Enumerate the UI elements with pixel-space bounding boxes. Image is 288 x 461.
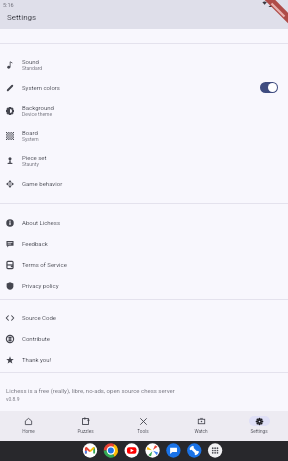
staticText: System — [22, 136, 39, 142]
button[interactable]: Privacy policy — [0, 275, 288, 296]
staticText: Settings — [250, 429, 268, 435]
staticText: Watch — [194, 429, 208, 435]
staticText: Home — [22, 429, 35, 435]
staticText: Terms of Service — [22, 261, 67, 268]
staticText: Staunty — [22, 161, 39, 167]
staticText: About Lichess — [22, 219, 60, 226]
staticText: Privacy policy — [22, 282, 59, 289]
staticText: v0.8.9 — [6, 396, 20, 402]
button[interactable]: Thank you! — [0, 349, 288, 370]
staticText: Lichess is a free (really), libre, no-ad… — [6, 387, 175, 394]
staticText: Piece set — [22, 154, 47, 161]
staticText: Game behavior — [22, 180, 63, 187]
button[interactable]: System colors — [0, 77, 288, 98]
button[interactable]: Background — [0, 98, 288, 123]
staticText: Puzzles — [77, 429, 94, 435]
staticText: Tools — [137, 429, 149, 435]
button[interactable]: About Lichess — [0, 212, 288, 233]
staticText: Background — [22, 104, 54, 111]
staticText: Contribute — [22, 335, 50, 342]
staticText: 5:16 — [3, 2, 14, 8]
staticText: Settings — [7, 13, 37, 22]
button[interactable]: Board — [0, 123, 288, 148]
staticText: System colors — [22, 84, 60, 91]
staticText: Standard — [22, 65, 43, 71]
button[interactable]: Tools — [114, 411, 172, 441]
button[interactable]: Game behavior — [0, 173, 288, 194]
button[interactable]: Settings — [230, 411, 288, 441]
button[interactable]: System colors toggle — [260, 82, 278, 93]
button[interactable]: Contribute — [0, 328, 288, 349]
button[interactable]: Piece set — [0, 148, 288, 173]
button[interactable]: Home — [0, 411, 57, 441]
staticText: Board — [22, 129, 38, 136]
button[interactable]: Source Code — [0, 307, 288, 328]
staticText: Device theme — [22, 111, 53, 117]
button[interactable]: Sound — [0, 52, 288, 77]
button[interactable]: Feedback — [0, 233, 288, 254]
button[interactable]: Puzzles — [57, 411, 114, 441]
staticText: Thank you! — [22, 356, 52, 363]
staticText: Sound — [22, 58, 39, 65]
button[interactable]: Terms of Service — [0, 254, 288, 275]
staticText: Feedback — [22, 240, 48, 247]
staticText: Source Code — [22, 314, 56, 321]
button[interactable]: Watch — [172, 411, 230, 441]
